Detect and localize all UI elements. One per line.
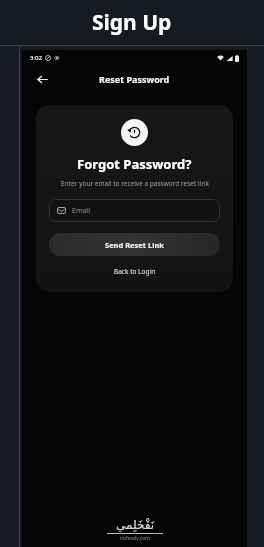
staticText: 3:02: [30, 54, 42, 62]
staticText: Sign Up: [92, 8, 172, 37]
button[interactable]: Back to Login: [108, 265, 162, 278]
button[interactable]: Send Reset Link: [49, 233, 220, 256]
staticText: nofexdy.com: [120, 535, 150, 542]
button[interactable]: Email: [49, 199, 220, 222]
staticText: Email: [72, 206, 90, 216]
staticText: Reset Password: [99, 73, 170, 85]
staticText: Back to Login: [114, 267, 156, 276]
staticText: Enter your email to receive a password r…: [61, 179, 209, 188]
button[interactable]: Back: [32, 69, 52, 89]
staticText: Send Reset Link: [105, 240, 164, 250]
staticText: Forgot Password?: [77, 155, 192, 173]
staticText: نَفْخَلِمي: [116, 518, 155, 532]
